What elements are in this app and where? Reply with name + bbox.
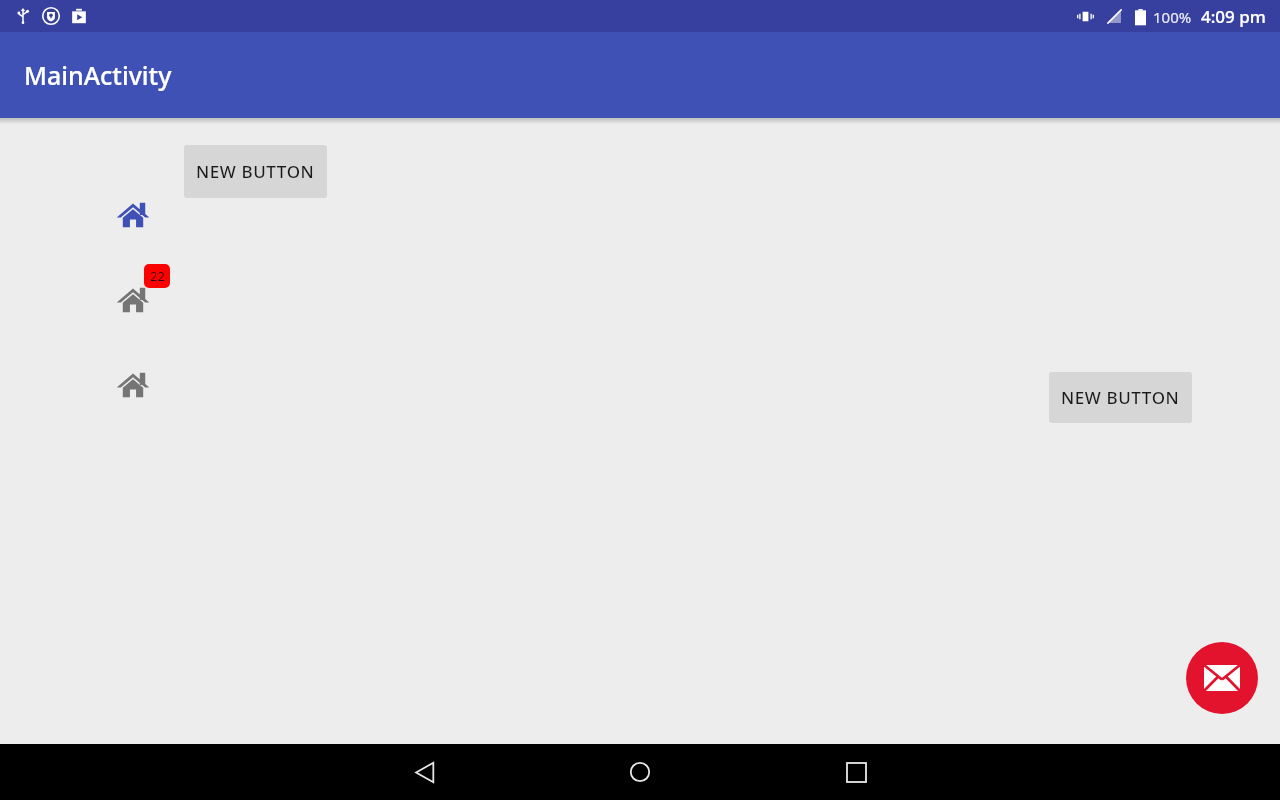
staticText: NEW BUTTON (196, 160, 315, 183)
staticText: MainActivity (24, 58, 172, 92)
button[interactable]: Home with 22 notifications (116, 283, 150, 317)
staticText: 22 (150, 267, 165, 285)
staticText: 100% (1153, 7, 1192, 27)
staticText: 4:09 pm (1201, 5, 1266, 28)
button[interactable]: Home (616, 748, 664, 796)
button[interactable]: Home (116, 368, 150, 402)
staticText: NEW BUTTON (1061, 386, 1180, 409)
button[interactable]: NEW BUTTON (184, 145, 327, 198)
button[interactable]: Send email (1186, 642, 1258, 714)
button[interactable]: Home (116, 198, 150, 232)
button[interactable]: NEW BUTTON (1049, 372, 1192, 423)
button[interactable]: Recent apps (832, 748, 880, 796)
button[interactable]: Back (400, 748, 448, 796)
